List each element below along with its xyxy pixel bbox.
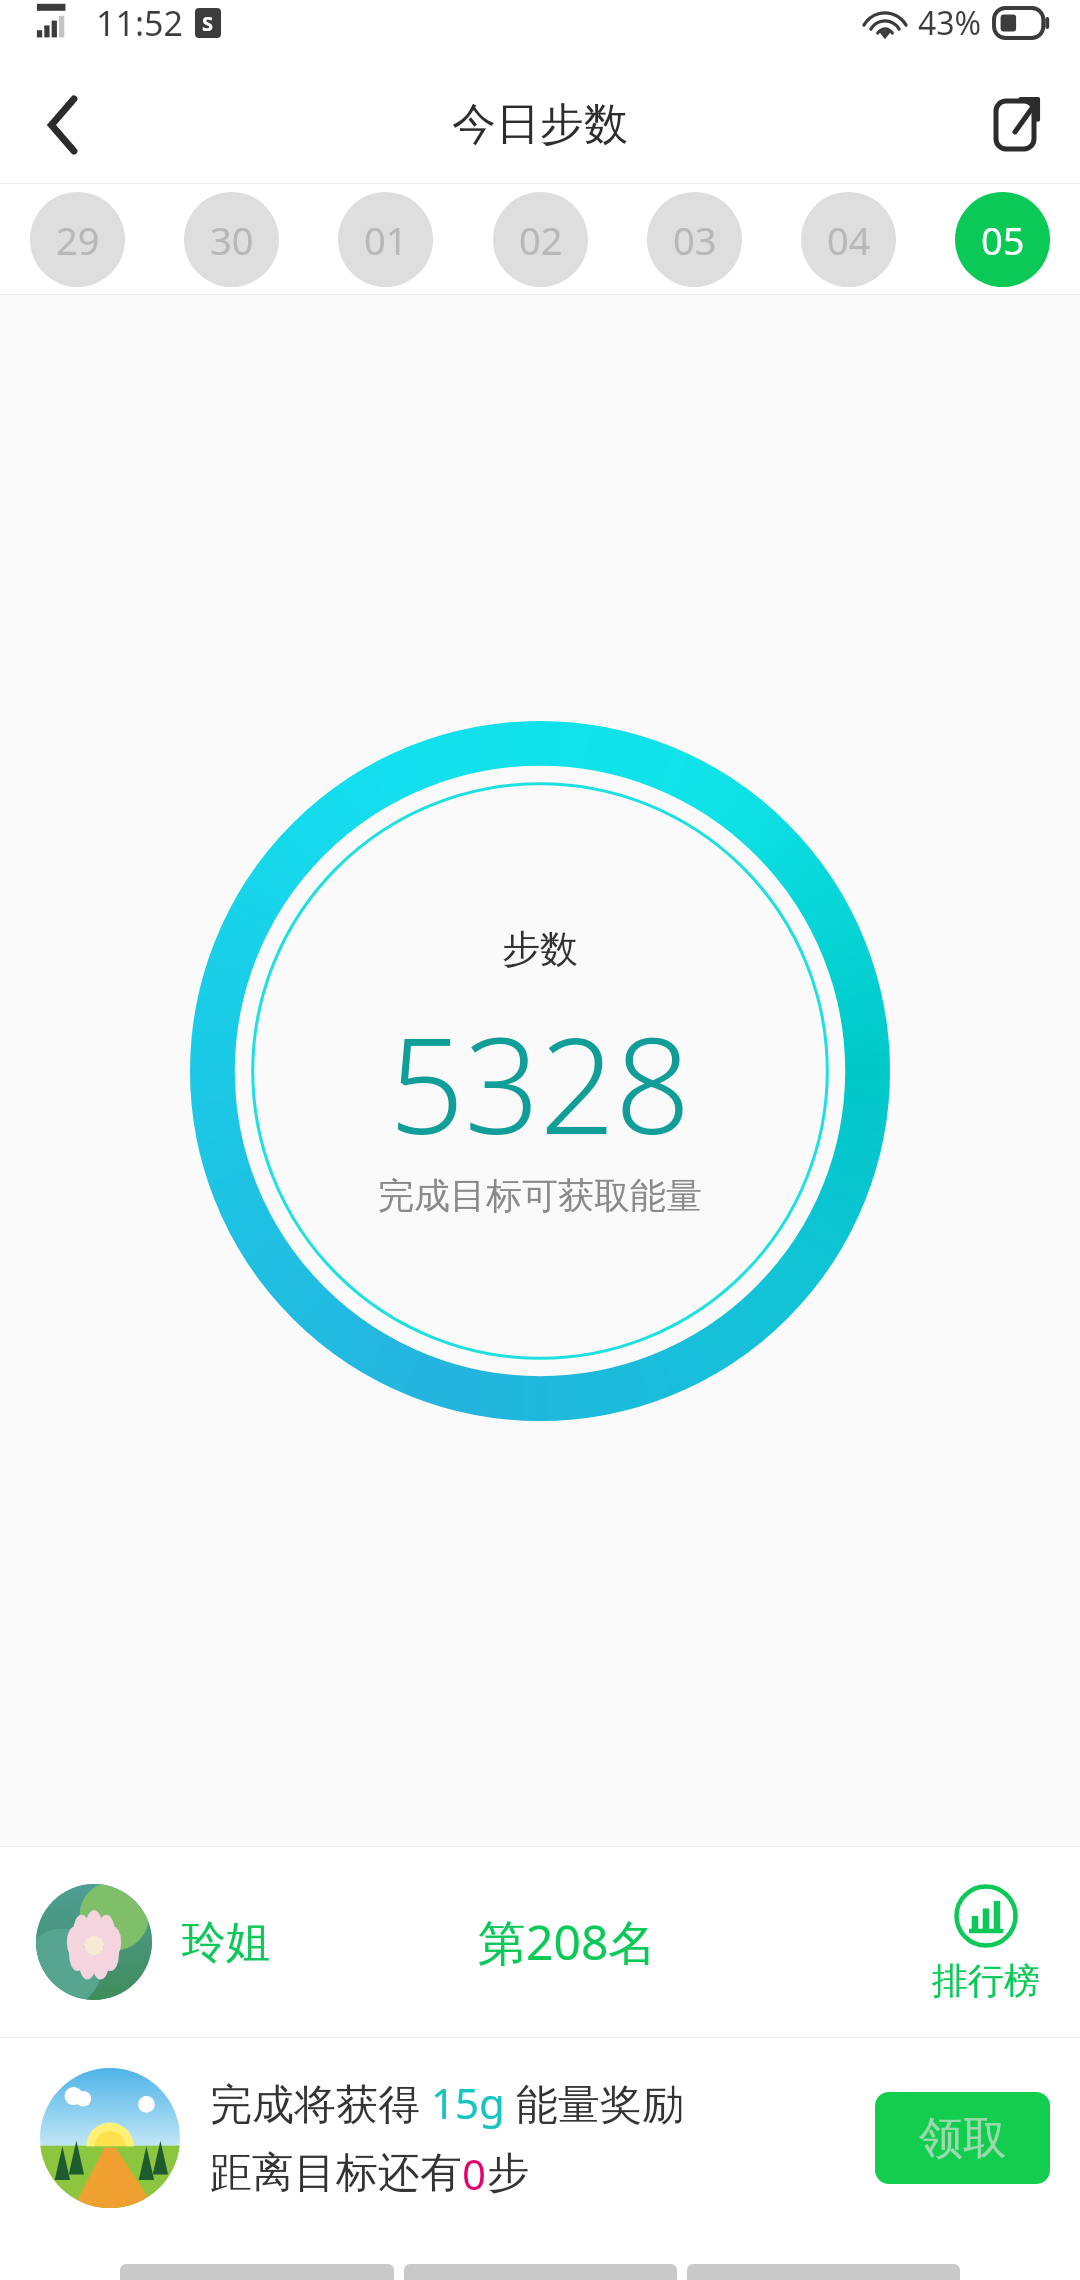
staticText: 距离目标还有: [210, 2147, 462, 2200]
staticText: 29: [56, 214, 100, 266]
staticText: S: [202, 10, 214, 37]
button[interactable]: 05: [955, 192, 1050, 287]
staticText: 完成目标可获取能量: [378, 1173, 702, 1218]
button[interactable]: 01: [338, 192, 433, 287]
staticText: 5328: [389, 993, 691, 1173]
button[interactable]: Share: [974, 84, 1056, 166]
staticText: 01: [364, 214, 408, 266]
staticText: 43%: [918, 1, 982, 45]
button[interactable]: 04: [801, 192, 896, 287]
staticText: 今日步数: [452, 97, 628, 152]
button[interactable]: Back: [22, 84, 104, 166]
staticText: 排行榜: [932, 1958, 1040, 2003]
staticText: 04: [827, 214, 871, 266]
staticText: 第208名: [478, 1909, 657, 1975]
button[interactable]: 30: [184, 192, 279, 287]
staticText: 领取: [919, 2111, 1007, 2166]
staticText: 05: [981, 214, 1025, 266]
staticText: 03: [673, 214, 717, 266]
staticText: 0: [462, 2145, 487, 2202]
button[interactable]: 03: [647, 192, 742, 287]
staticText: 玲姐: [182, 1915, 270, 1970]
staticText: 30: [210, 214, 254, 266]
staticText: 能量奖励: [505, 2074, 684, 2131]
staticText: 步: [487, 2147, 529, 2200]
button[interactable]: 02: [493, 192, 588, 287]
button[interactable]: 排行榜: [928, 1878, 1044, 2007]
button[interactable]: [40, 2068, 180, 2208]
staticText: 11:52: [96, 0, 183, 46]
staticText: 步数: [502, 925, 578, 973]
staticText: 02: [519, 214, 563, 266]
button[interactable]: 领取: [875, 2092, 1050, 2184]
button[interactable]: 29: [30, 192, 125, 287]
staticText: 15g: [431, 2074, 505, 2131]
button[interactable]: [36, 1884, 152, 2000]
staticText: 完成将获得: [210, 2074, 431, 2131]
